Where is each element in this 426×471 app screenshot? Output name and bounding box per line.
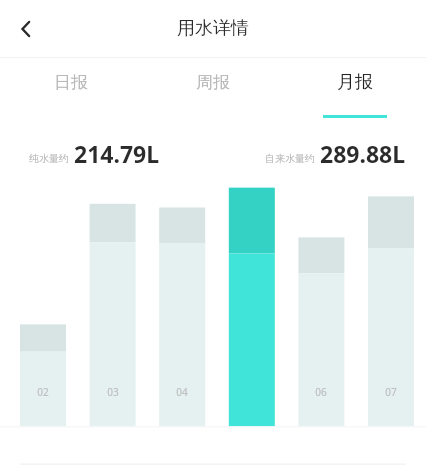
staticText: 纯水量约	[29, 152, 69, 165]
staticText: 02	[37, 385, 49, 399]
staticText: 04	[176, 385, 188, 399]
staticText: 自来水量约	[265, 152, 315, 165]
staticText: 03	[107, 385, 119, 399]
staticText: 07	[385, 385, 397, 399]
staticText: 214.79L	[74, 138, 160, 169]
staticText: 月报	[337, 71, 373, 94]
button[interactable]: 月报	[284, 58, 426, 121]
button[interactable]: Back	[4, 7, 48, 51]
staticText: 06	[315, 385, 327, 399]
staticText: 用水详情	[177, 17, 249, 40]
button[interactable]	[0, 169, 426, 471]
button[interactable]: 周报	[142, 58, 284, 121]
staticText: 周报	[196, 72, 230, 93]
staticText: 289.88L	[320, 138, 406, 169]
staticText: 日报	[54, 72, 88, 93]
button[interactable]: 日报	[0, 58, 142, 121]
